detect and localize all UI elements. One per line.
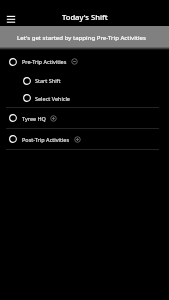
button[interactable]: Pre-Trip Activities [0, 51, 169, 72]
button[interactable]: Tyree HQ [0, 108, 169, 128]
button[interactable]: Collapse section [69, 56, 80, 67]
staticText: Tyree HQ [22, 115, 46, 122]
button[interactable]: Start Shift [0, 72, 169, 89]
button[interactable]: Expand section [48, 113, 59, 124]
button[interactable]: Post-Trip Activities [0, 129, 169, 149]
staticText: Let's get started by tapping Pre-Trip Ac… [17, 33, 146, 41]
staticText: Pre-Trip Activities [22, 58, 67, 65]
button[interactable]: Expand section [72, 134, 83, 145]
staticText: Post-Trip Activities [22, 136, 70, 143]
staticText: Start Shift [35, 77, 61, 84]
button[interactable]: Select Vehicle [0, 89, 169, 107]
button[interactable]: Open navigation menu [3, 10, 19, 26]
staticText: Today's Shift [62, 12, 108, 22]
staticText: Select Vehicle [35, 95, 70, 102]
